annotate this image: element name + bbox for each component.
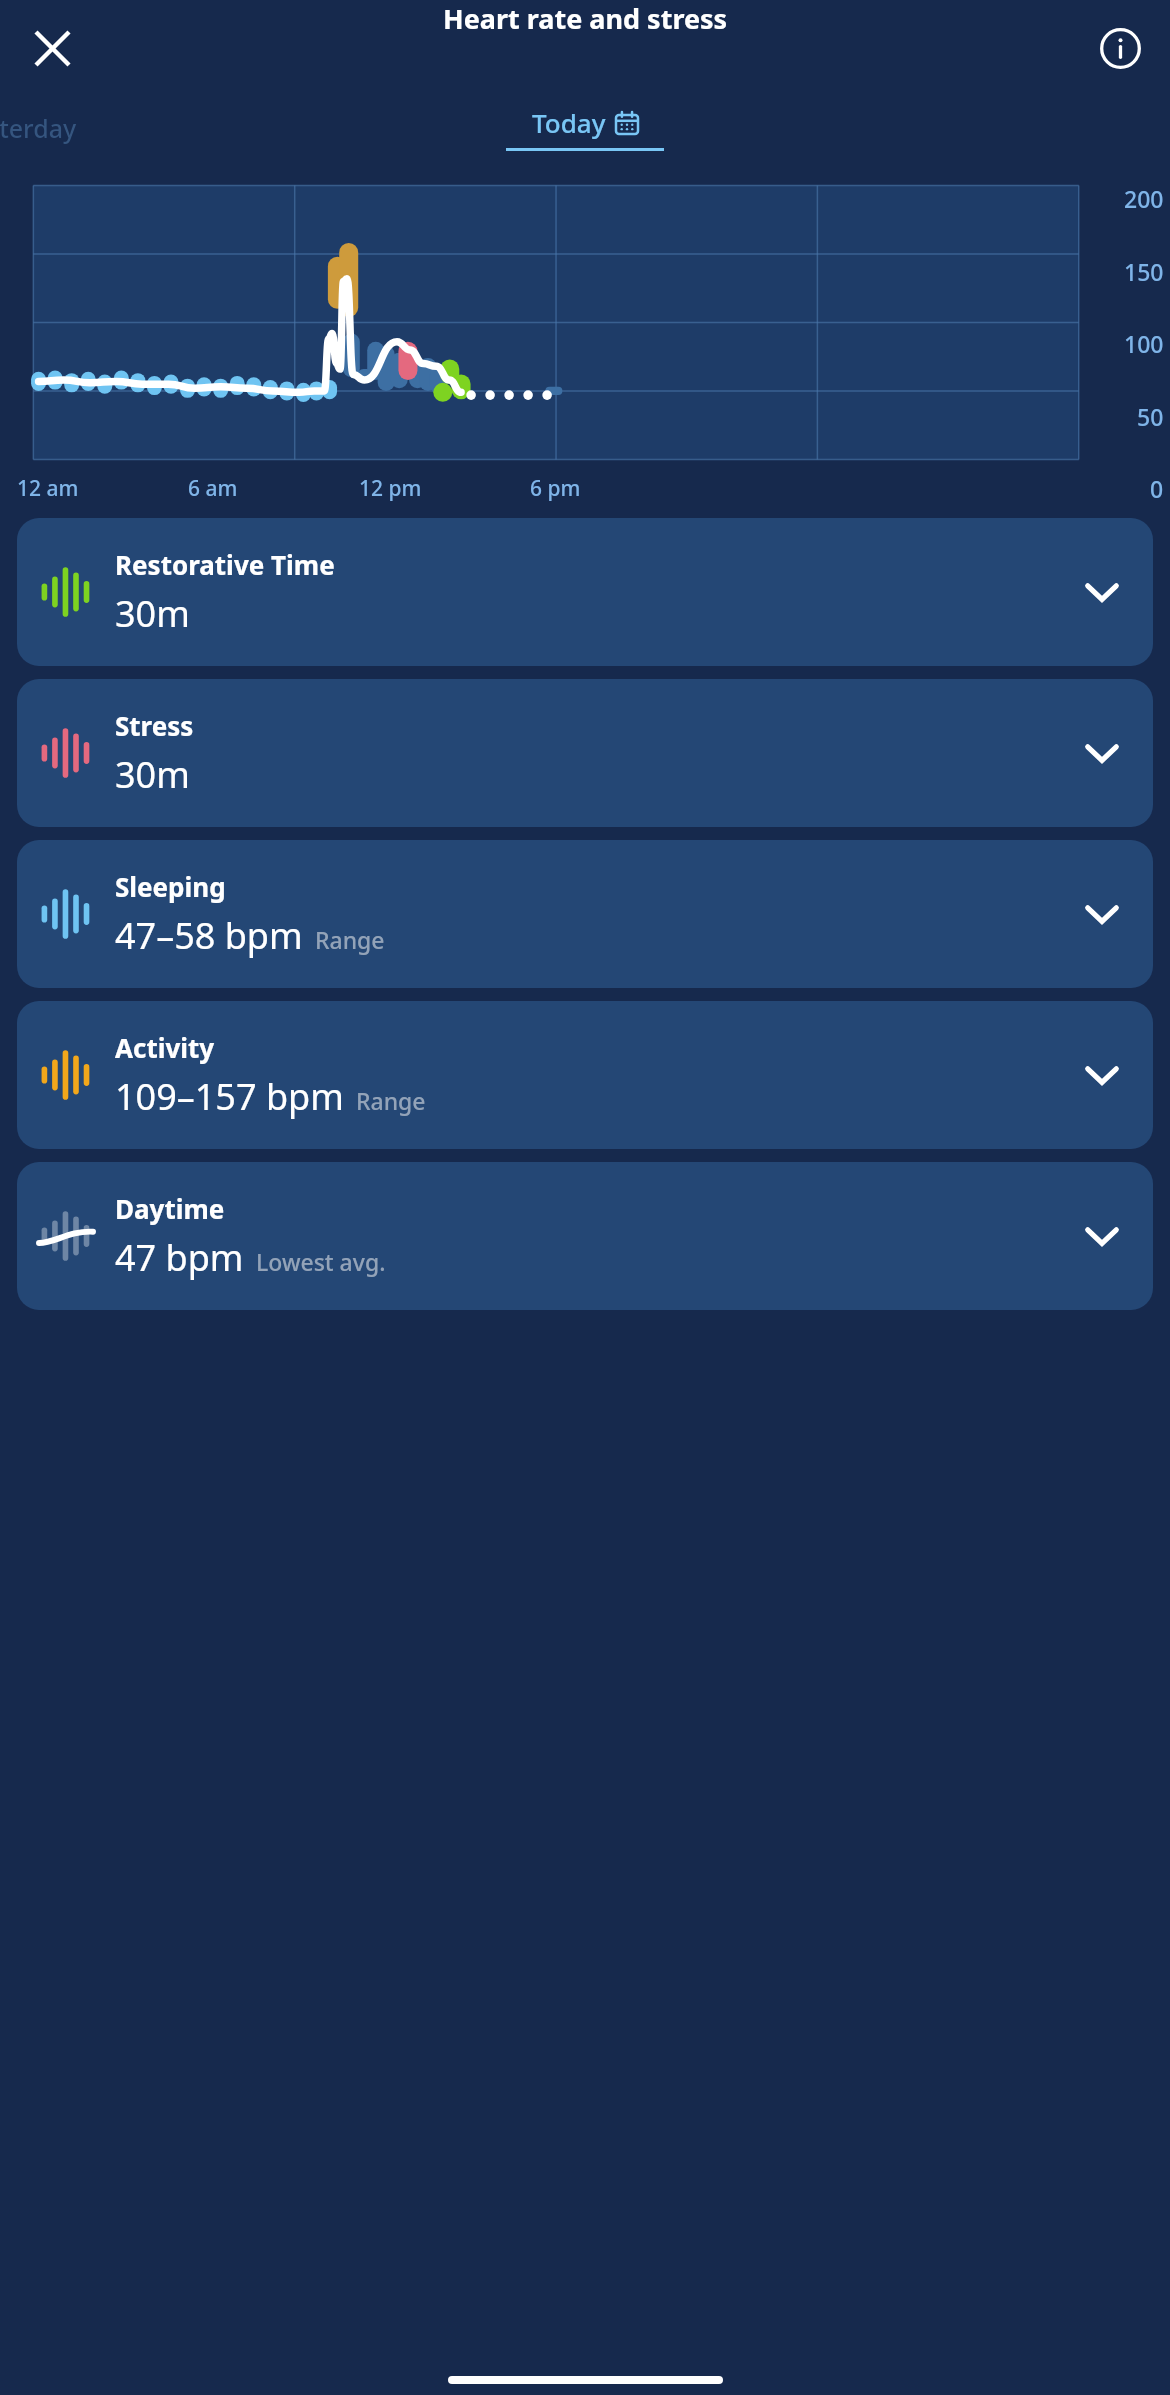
staticText: Sleeping xyxy=(115,869,226,904)
button[interactable]: Sleeping xyxy=(17,840,1153,988)
staticText: Range xyxy=(315,924,385,955)
staticText: Today xyxy=(532,105,606,140)
staticText: Lowest avg. xyxy=(256,1246,386,1277)
button[interactable]: Daytime xyxy=(17,1162,1153,1310)
staticText: Restorative Time xyxy=(115,547,335,582)
staticText: Activity xyxy=(115,1030,215,1065)
button[interactable]: Activity xyxy=(17,1001,1153,1149)
staticText: 30m xyxy=(115,589,190,638)
button[interactable]: Expand Activity xyxy=(1073,1046,1131,1104)
staticText: 30m xyxy=(115,750,190,799)
staticText: 6 pm xyxy=(530,474,581,503)
staticText: Stress xyxy=(115,708,194,743)
button[interactable]: Today xyxy=(506,105,664,151)
staticText: 47–58 bpm xyxy=(115,911,303,960)
button[interactable]: Info xyxy=(1090,18,1150,78)
staticText: 200 xyxy=(1124,183,1164,214)
staticText: 0 xyxy=(1150,473,1164,504)
button[interactable]: Close xyxy=(20,16,84,80)
button[interactable]: sterday xyxy=(0,111,77,145)
staticText: 6 am xyxy=(188,474,238,503)
button[interactable]: Restorative Time xyxy=(17,518,1153,666)
staticText: 100 xyxy=(1124,328,1164,359)
staticText: 50 xyxy=(1137,401,1164,432)
staticText: 12 pm xyxy=(359,474,422,503)
staticText: Range xyxy=(356,1085,426,1116)
button[interactable]: Expand Daytime xyxy=(1073,1207,1131,1265)
staticText: Daytime xyxy=(115,1191,225,1226)
button[interactable]: Expand Stress xyxy=(1073,724,1131,782)
staticText: 150 xyxy=(1124,256,1164,287)
button[interactable]: Expand Restorative Time xyxy=(1073,563,1131,621)
staticText: 12 am xyxy=(17,474,79,503)
button[interactable]: Expand Sleeping xyxy=(1073,885,1131,943)
staticText: 109–157 bpm xyxy=(115,1072,344,1121)
button[interactable]: Stress xyxy=(17,679,1153,827)
staticText: sterday xyxy=(0,111,77,145)
staticText: 47 bpm xyxy=(115,1233,244,1282)
staticText: Heart rate and stress xyxy=(443,0,728,37)
